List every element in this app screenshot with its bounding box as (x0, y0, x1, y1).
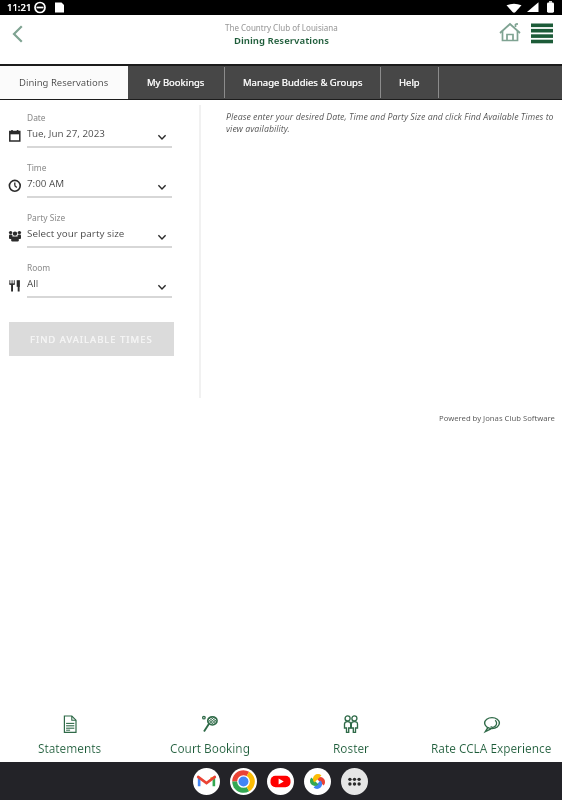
button[interactable]: Date (0, 107, 200, 155)
button[interactable]: Photos (304, 768, 331, 795)
staticText: Please enter your desired Date, Time and… (226, 111, 554, 135)
staticText: Room (27, 262, 51, 273)
staticText: Help (399, 76, 420, 89)
staticText: Rate CCLA Experience (431, 740, 552, 756)
staticText: Roster (333, 740, 369, 756)
button[interactable]: Chrome (230, 768, 257, 795)
button[interactable]: YouTube (267, 768, 294, 795)
staticText: Date (27, 112, 46, 123)
button[interactable]: Court Booking (140, 700, 280, 762)
button[interactable]: Help (381, 66, 438, 99)
staticText: 7:00 AM (27, 177, 65, 190)
button[interactable]: Party Size (0, 207, 200, 255)
button[interactable]: Rate CCLA Experience (421, 700, 562, 762)
staticText: All (27, 277, 39, 290)
staticText: Party Size (27, 212, 66, 223)
staticText: Dining Reservations (19, 76, 109, 89)
staticText: The Country Club of Louisiana (225, 22, 338, 33)
staticText: Powered by Jonas Club Software (439, 413, 555, 423)
staticText: Court Booking (170, 740, 250, 756)
staticText: Tue, Jun 27, 2023 (27, 127, 105, 140)
button[interactable]: Gmail (193, 768, 220, 795)
button[interactable]: Time (0, 157, 200, 205)
button[interactable]: Back (0, 16, 36, 52)
button[interactable]: Manage Buddies & Groups (225, 66, 380, 99)
button[interactable]: Menu (527, 18, 557, 48)
button[interactable]: All apps (341, 768, 368, 795)
button[interactable]: Room (0, 257, 200, 305)
button[interactable]: Roster (280, 700, 421, 762)
button[interactable]: FIND AVAILABLE TIMES (9, 322, 174, 356)
button[interactable]: Home (495, 18, 525, 48)
staticText: My Bookings (147, 76, 205, 89)
staticText: Manage Buddies & Groups (243, 76, 363, 89)
staticText: 11:21 (7, 1, 32, 14)
button[interactable]: Statements (0, 700, 140, 762)
button[interactable]: My Bookings (128, 66, 224, 99)
staticText: Time (27, 162, 47, 173)
staticText: Dining Reservations (234, 34, 330, 47)
staticText: Statements (38, 740, 102, 756)
staticText: Select your party size (27, 227, 125, 240)
staticText: FIND AVAILABLE TIMES (30, 333, 153, 346)
button[interactable]: Dining Reservations (0, 66, 128, 99)
